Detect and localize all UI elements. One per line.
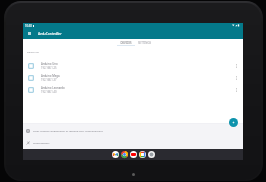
staticText: What ArduIno configuration to respond yo… bbox=[33, 129, 103, 132]
staticText: ArduController bbox=[38, 31, 62, 36]
button[interactable]: Open navigation menu bbox=[23, 28, 35, 39]
button[interactable]: YouTube bbox=[130, 151, 137, 158]
button[interactable]: What ArduIno configuration to respond yo… bbox=[23, 124, 243, 137]
staticText: SETTINGS bbox=[138, 41, 151, 45]
button[interactable]: Photos bbox=[139, 151, 146, 158]
button[interactable]: DEVICES bbox=[117, 39, 135, 48]
button[interactable]: SETTINGS bbox=[135, 39, 153, 48]
button[interactable]: Arduino Leonardo bbox=[23, 84, 243, 96]
staticText: Device list bbox=[27, 50, 39, 53]
button[interactable]: More options bbox=[231, 60, 241, 72]
staticText: Arduino Leonardo bbox=[41, 86, 65, 90]
staticText: DEVICES bbox=[120, 41, 132, 45]
staticText: Arduino Mega bbox=[41, 74, 60, 78]
button[interactable]: Gmail bbox=[112, 151, 119, 158]
button[interactable]: Arduino Uno bbox=[23, 60, 243, 72]
staticText: 10:30 bbox=[25, 24, 32, 28]
staticText: 192.168.1.40 bbox=[41, 90, 57, 94]
button[interactable]: More options bbox=[231, 72, 241, 84]
button[interactable]: String Reports bbox=[23, 137, 243, 148]
button[interactable]: Add device bbox=[229, 118, 238, 127]
staticText: 192.168.1.25 bbox=[41, 66, 57, 70]
button[interactable]: More options bbox=[231, 84, 241, 96]
staticText: Arduino Uno bbox=[41, 62, 58, 66]
button[interactable]: Files bbox=[148, 151, 155, 158]
staticText: 192.168.1.37 bbox=[41, 78, 57, 82]
staticText: String Reports bbox=[33, 141, 50, 144]
button[interactable]: Arduino Mega bbox=[23, 72, 243, 84]
button[interactable]: Chrome bbox=[121, 151, 128, 158]
